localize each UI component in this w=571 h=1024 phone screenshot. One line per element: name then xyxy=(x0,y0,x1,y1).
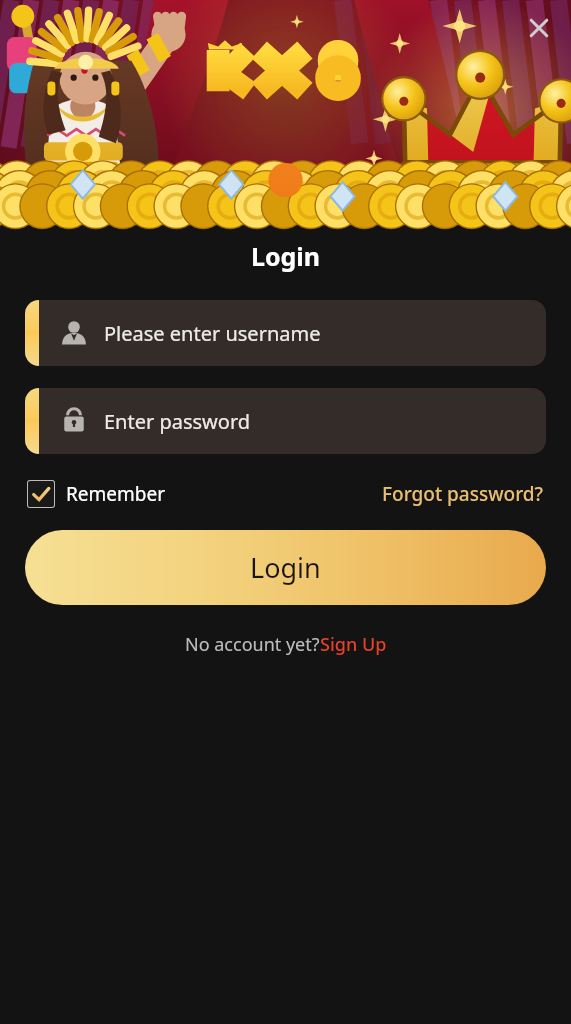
button[interactable]: Remember xyxy=(27,480,166,508)
button[interactable]: Enter password xyxy=(25,388,546,454)
staticText: Enter password xyxy=(104,408,251,435)
button[interactable]: Please enter username xyxy=(25,300,546,366)
staticText: Forgot password? xyxy=(382,481,544,507)
staticText: Remember xyxy=(66,481,166,507)
button[interactable]: Forgot password? xyxy=(382,481,544,507)
button[interactable]: Sign Up xyxy=(320,632,387,657)
staticText: Please enter username xyxy=(104,320,321,347)
staticText: No account yet? xyxy=(185,632,320,657)
staticText: Login xyxy=(250,549,321,586)
button[interactable]: Login xyxy=(25,530,546,605)
staticText: Sign Up xyxy=(320,632,387,657)
button[interactable]: Close xyxy=(515,4,563,52)
staticText: Login xyxy=(0,239,571,273)
